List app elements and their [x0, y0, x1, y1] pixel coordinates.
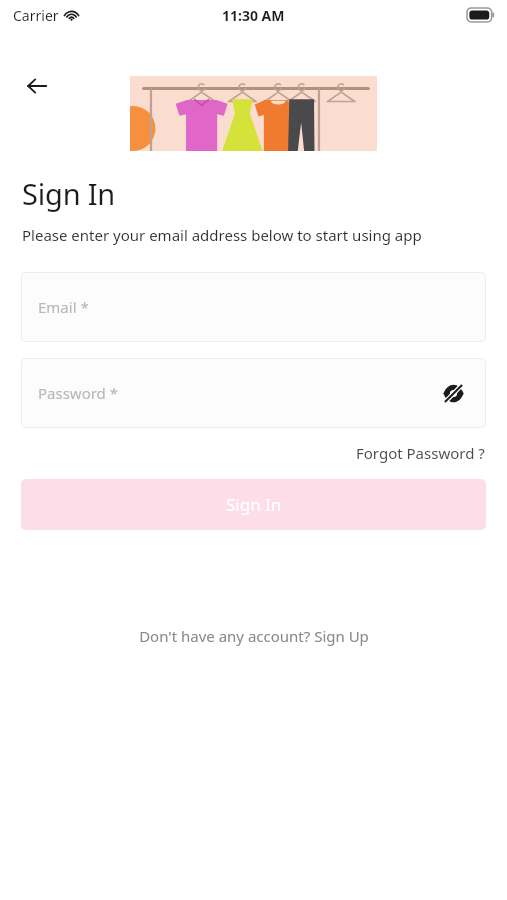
button[interactable]: Don't have any account? Sign Up: [133, 622, 375, 650]
button[interactable]: Forgot Password ?: [354, 440, 487, 466]
button[interactable]: Sign In: [21, 479, 486, 530]
staticText: Sign In: [22, 174, 116, 213]
button[interactable]: Password *: [21, 358, 486, 428]
staticText: Password *: [38, 383, 119, 403]
staticText: Carrier: [13, 6, 59, 25]
staticText: Don't have any account? Sign Up: [139, 626, 369, 646]
staticText: Email *: [38, 297, 89, 317]
button[interactable]: Toggle password visibility: [438, 378, 468, 408]
staticText: Sign In: [226, 493, 282, 516]
staticText: Please enter your email address below to…: [22, 225, 422, 245]
button[interactable]: Email *: [21, 272, 486, 342]
staticText: Forgot Password ?: [356, 443, 485, 463]
button[interactable]: Back: [17, 66, 57, 106]
staticText: 11:30 AM: [222, 6, 285, 25]
